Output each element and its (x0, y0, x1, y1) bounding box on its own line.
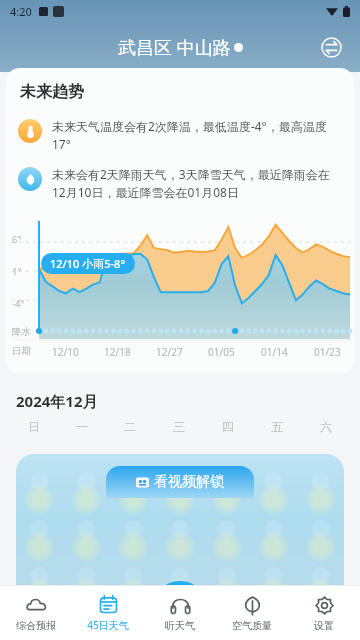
staticText: 日期 (12, 345, 36, 357)
staticText: 45日天气 (87, 618, 129, 632)
button[interactable]: 听天气 (144, 586, 216, 640)
staticText: 日 (28, 419, 40, 434)
staticText: 听天气 (165, 619, 195, 632)
staticText: 二 (124, 419, 136, 434)
staticText: 未来会有2天降雨天气，3天降雪天气，最近降雨会在12月10日，最近降雪会在01月… (52, 166, 340, 201)
staticText: 未来趋势 (20, 82, 84, 102)
staticText: 12/10 小雨5-8° (50, 256, 126, 271)
button[interactable]: Play video to unlock (151, 581, 209, 639)
staticText: 六 (320, 419, 332, 434)
staticText: 综合预报 (16, 619, 56, 632)
staticText: 降水 (12, 326, 36, 338)
staticText: 01/23 (314, 345, 341, 359)
button[interactable]: Switch temperature unit (314, 30, 348, 64)
staticText: 6° (12, 233, 36, 246)
staticText: 2024年12月 (16, 391, 98, 411)
staticText: 01/14 (261, 345, 288, 359)
button[interactable]: 综合预报 (0, 586, 72, 640)
button[interactable]: 45日天气 (72, 586, 144, 640)
staticText: 12/10 (52, 345, 79, 359)
staticText: -4° (12, 297, 36, 310)
staticText: 三 (173, 419, 185, 434)
staticText: 未来天气温度会有2次降温，最低温度-4°，最高温度17° (52, 118, 340, 153)
staticText: 4:20 (10, 4, 32, 19)
staticText: 五 (271, 419, 283, 434)
staticText: 一 (76, 419, 88, 434)
staticText: 01/05 (208, 345, 235, 359)
staticText: 设置 (314, 619, 334, 632)
button[interactable]: 设置 (288, 586, 360, 640)
staticText: 12/18 (104, 345, 131, 359)
button[interactable]: 武昌区 中山路 (118, 35, 243, 60)
button[interactable]: 12/10 小雨5-8° (41, 253, 135, 274)
staticText: 武昌区 中山路 (118, 35, 231, 60)
staticText: 看视频解锁 (154, 473, 224, 491)
staticText: 12/27 (156, 345, 183, 359)
button[interactable]: 空气质量 (216, 586, 288, 640)
staticText: 1° (12, 265, 36, 278)
staticText: 四 (222, 419, 234, 434)
staticText: 空气质量 (232, 619, 272, 632)
button[interactable]: 看视频解锁 (106, 466, 254, 498)
